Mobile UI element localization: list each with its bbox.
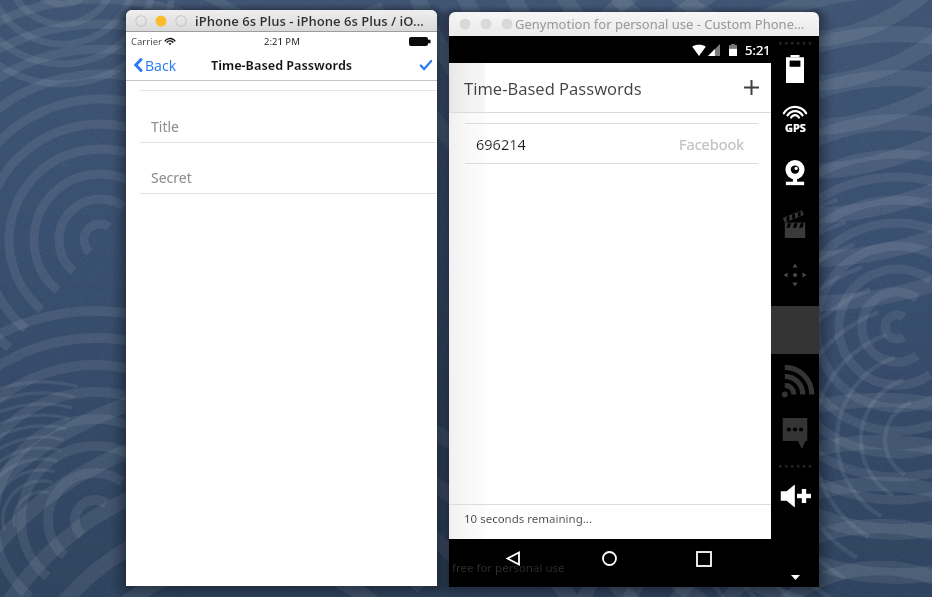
- staticText: iPhone 6s Plus - iPhone 6s Plus / iO…: [195, 12, 424, 30]
- staticText: GPS: [785, 120, 806, 132]
- staticText: Carrier: [131, 35, 162, 48]
- staticText: Genymotion for personal use - Custom Pho…: [515, 15, 805, 33]
- staticText: Time-Based Passwords: [464, 77, 642, 99]
- button[interactable]: Add: [730, 63, 771, 112]
- button[interactable]: Volume up: [771, 475, 819, 517]
- staticText: 2:21 PM: [264, 35, 300, 48]
- staticText: Time-Based Passwords: [211, 57, 353, 74]
- button[interactable]: Window button: [175, 15, 187, 27]
- staticText: Title: [151, 117, 179, 136]
- staticText: free for personal use: [452, 560, 565, 576]
- button[interactable]: Done: [411, 50, 437, 80]
- button[interactable]: Camera: [771, 149, 819, 198]
- button[interactable]: Home: [592, 541, 626, 575]
- button[interactable]: Window button: [155, 15, 167, 27]
- staticText: 10 seconds remaining...: [464, 511, 592, 527]
- button[interactable]: Screen recorder: [771, 200, 819, 248]
- button[interactable]: Window button: [135, 15, 147, 27]
- staticText: Back: [145, 56, 177, 75]
- staticText: 5:21: [745, 41, 771, 59]
- button[interactable]: Window button: [459, 18, 471, 30]
- button[interactable]: Rotation: [771, 252, 819, 298]
- button[interactable]: Battery: [771, 45, 819, 93]
- staticText: Facebook: [679, 134, 745, 154]
- button[interactable]: Window button: [501, 18, 513, 30]
- button[interactable]: Window button: [480, 18, 492, 30]
- button[interactable]: Back: [126, 50, 187, 80]
- button[interactable]: 696214: [449, 124, 771, 163]
- button[interactable]: More: [771, 562, 819, 587]
- button[interactable]: Recents: [687, 542, 721, 576]
- button[interactable]: Back: [496, 541, 530, 575]
- staticText: Secret: [151, 168, 192, 187]
- staticText: 696214: [476, 134, 526, 154]
- button[interactable]: GPS: [771, 96, 819, 130]
- button[interactable]: Messages: [771, 408, 819, 459]
- button[interactable]: Network: [771, 355, 819, 405]
